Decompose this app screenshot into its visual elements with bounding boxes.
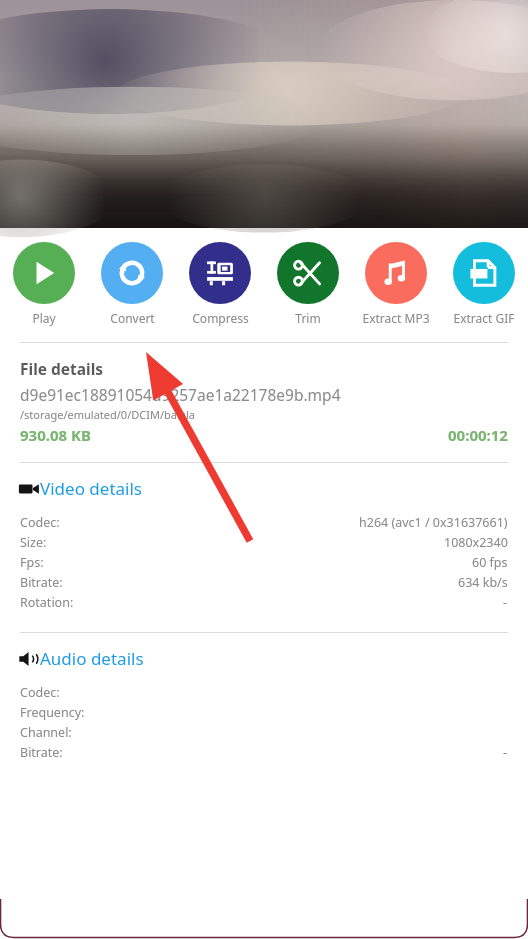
staticText: Frequency: [20, 704, 85, 721]
button[interactable]: Audio details [18, 647, 510, 670]
staticText: 00:00:12 [448, 425, 508, 445]
button[interactable]: Trim [264, 242, 352, 326]
staticText: /storage/emulated/0/DCIM/balala [20, 407, 195, 422]
staticText: - [503, 594, 508, 611]
staticText: h264 (avc1 / 0x31637661) [359, 514, 508, 531]
button[interactable]: Extract GIF [440, 242, 528, 326]
staticText: - [503, 744, 508, 761]
staticText: Compress [192, 310, 249, 326]
button[interactable]: Compress [176, 242, 264, 326]
staticText: Convert [110, 310, 155, 326]
staticText: Trim [295, 310, 321, 326]
button[interactable]: Extract MP3 [352, 242, 440, 326]
button[interactable]: Play [0, 242, 88, 326]
staticText: 60 fps [472, 554, 508, 571]
staticText: Bitrate: [20, 574, 63, 591]
staticText: Size: [20, 534, 47, 551]
staticText: File details [20, 358, 104, 379]
staticText: Video details [40, 477, 142, 500]
staticText: 634 kb/s [458, 574, 508, 591]
staticText: Channel: [20, 724, 72, 741]
staticText: Extract GIF [453, 310, 515, 326]
staticText: Bitrate: [20, 744, 63, 761]
staticText: 930.08 KB [20, 425, 91, 445]
staticText: Play [32, 310, 56, 326]
staticText: Rotation: [20, 594, 74, 611]
staticText: Extract MP3 [362, 310, 430, 326]
button[interactable]: Convert [88, 242, 176, 326]
staticText: Audio details [40, 647, 144, 670]
button[interactable]: Video details [18, 477, 510, 500]
staticText: Codec: [20, 514, 60, 531]
staticText: d9e91ec18891054d9257ae1a22178e9b.mp4 [20, 384, 341, 405]
staticText: 1080x2340 [444, 534, 508, 551]
staticText: Fps: [20, 554, 44, 571]
staticText: Codec: [20, 684, 60, 701]
